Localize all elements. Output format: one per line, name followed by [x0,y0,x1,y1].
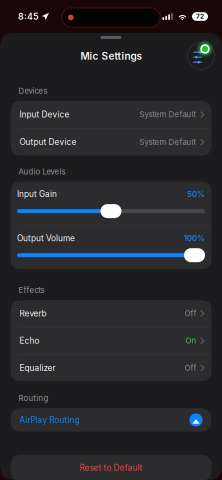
staticText: Input Device [19,109,69,119]
staticText: On [186,336,197,345]
button[interactable]: Reverb [10,300,211,327]
staticText: Effects [18,285,44,295]
staticText: 8:45 [18,11,39,22]
button[interactable]: Input Gain [10,182,211,225]
staticText: Equalizer [19,363,55,373]
button[interactable]: AirPlay Routing [10,408,211,432]
button[interactable]: Output Volume [10,226,211,269]
staticText: Audio Levels [18,167,65,176]
staticText: Reset to Default [79,463,142,473]
staticText: Off [185,363,197,373]
button[interactable]: Equalizer [10,355,211,381]
button[interactable]: Output Device [10,129,211,156]
staticText: 72 [196,13,204,20]
staticText: Routing [18,393,48,403]
button[interactable]: Input Device [10,101,211,128]
staticText: Mic Settings [80,50,141,62]
staticText: Echo [19,336,39,346]
button[interactable]: Reset to Default [10,455,211,480]
staticText: System Default [140,110,197,119]
staticText: Output Device [19,137,76,147]
staticText: Output Volume [17,233,75,243]
staticText: Devices [18,86,47,96]
staticText: Input Gain [17,189,57,199]
button[interactable]: Audio profile [186,41,216,71]
staticText: Off [185,309,197,318]
button[interactable]: Echo [10,327,211,354]
staticText: 100% [184,233,205,243]
staticText: 50% [187,189,205,199]
staticText: System Default [140,137,197,147]
staticText: Reverb [19,308,46,318]
staticText: AirPlay Routing [19,415,79,425]
